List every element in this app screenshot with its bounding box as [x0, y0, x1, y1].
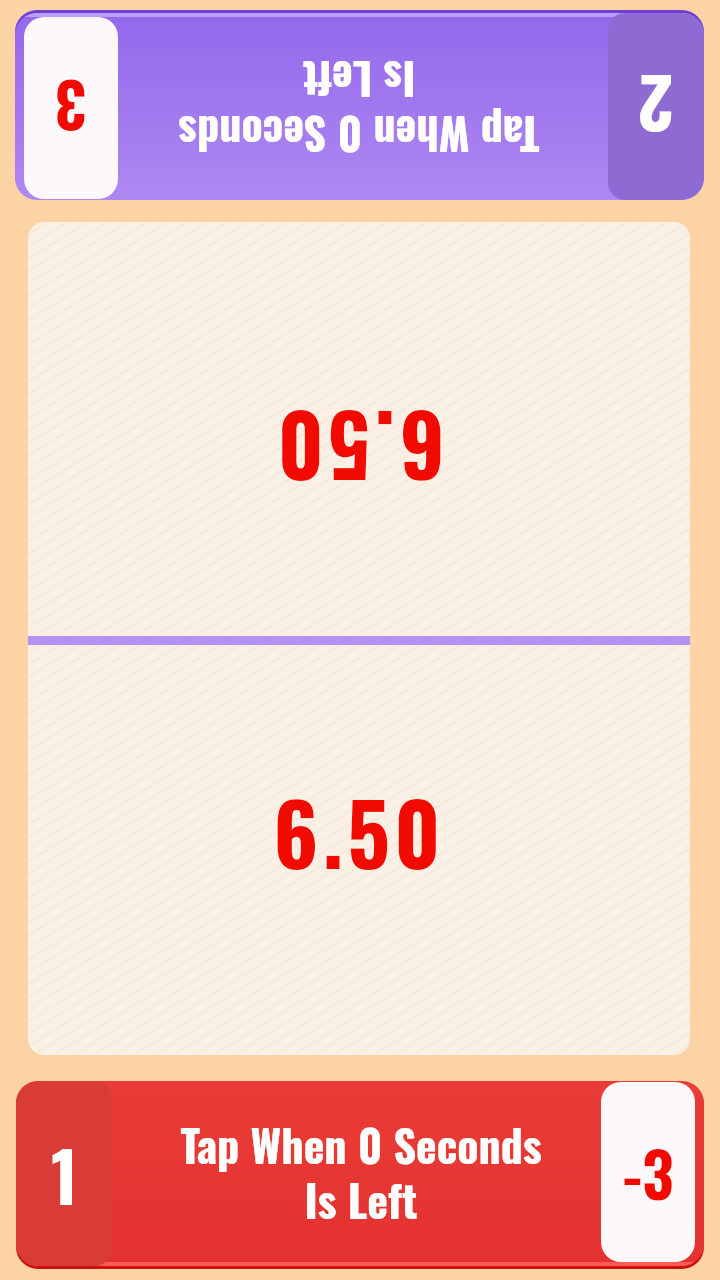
staticText: 1	[51, 1123, 78, 1225]
staticText: Tap When 0 Seconds Is Left	[180, 1112, 542, 1232]
button[interactable]: Your tap area	[28, 638, 690, 1055]
button[interactable]: 1	[16, 1081, 704, 1266]
staticText: 6.50	[273, 769, 445, 893]
staticText: Tap When 0 Seconds Is Left	[178, 48, 540, 168]
staticText: 6.50	[273, 387, 445, 511]
staticText: 3	[55, 63, 87, 153]
button[interactable]: Opponent tap area	[28, 222, 690, 639]
button[interactable]: 2	[15, 13, 704, 200]
staticText: -3	[622, 1127, 674, 1217]
staticText: 2	[638, 55, 674, 157]
